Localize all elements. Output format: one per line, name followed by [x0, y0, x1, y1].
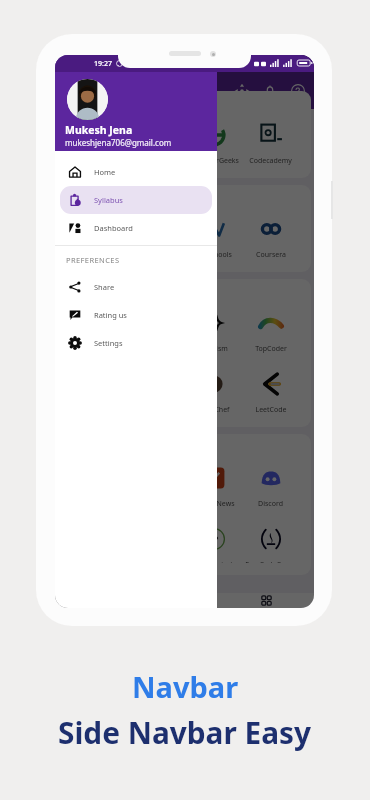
staticText: Dashboard [94, 223, 133, 233]
button[interactable]: Help [290, 83, 306, 99]
button[interactable]: Udemy [70, 216, 128, 260]
staticText: PREFERENCES [66, 255, 120, 265]
button[interactable]: Coursera [242, 216, 299, 260]
staticText: Mukesh Jena [65, 123, 133, 137]
button[interactable]: Share [60, 273, 212, 301]
button[interactable]: Open navigation menu [64, 82, 81, 99]
button[interactable]: HackerNews [185, 465, 242, 509]
staticText: Navbar [132, 667, 239, 706]
staticText: HackerRank [79, 344, 119, 354]
staticText: TopCoder [255, 344, 287, 354]
staticText: W3Schools [196, 250, 232, 260]
staticText: Udemy [87, 250, 111, 260]
staticText: CodeChef [197, 405, 230, 415]
button[interactable]: Home [60, 158, 212, 186]
staticText: Rating us [94, 310, 127, 320]
button[interactable]: OdinProject [185, 526, 242, 563]
button[interactable]: Code [205, 594, 218, 607]
button[interactable]: Rating us [60, 301, 212, 329]
button[interactable]: GeeksForGeeks [185, 122, 242, 166]
staticText: LeetCode [255, 405, 287, 415]
button[interactable]: Codecademy [242, 122, 299, 166]
staticText: GeeksForGeeks [188, 156, 239, 166]
button[interactable]: Programiz [128, 122, 185, 166]
staticText: Coursera [256, 250, 286, 260]
button[interactable]: Dashboard [60, 214, 212, 242]
staticText: Share [94, 282, 115, 292]
staticText: Practice Coding [70, 286, 140, 298]
staticText: Codecademy [249, 156, 292, 166]
button[interactable]: FreeCodeCamp [242, 526, 299, 563]
button[interactable]: Apps [260, 594, 273, 607]
button[interactable]: HackerRank [70, 310, 128, 354]
staticText: OdinProject [194, 560, 233, 563]
staticText: Discord [258, 499, 283, 509]
button[interactable]: Notifications [262, 83, 278, 99]
button[interactable]: Tutorialspoint [70, 122, 128, 166]
button[interactable]: W3Schools [185, 216, 242, 260]
button[interactable]: LeetCode [242, 371, 299, 415]
button[interactable]: Syllabus [60, 186, 212, 214]
button[interactable]: Settings [60, 329, 212, 357]
staticText: Syllabus [94, 195, 123, 205]
staticText: Learn Programming [70, 98, 160, 110]
button[interactable]: TopCoder [242, 310, 299, 354]
staticText: Home [94, 167, 116, 177]
staticText: 19:27 [94, 59, 112, 69]
button[interactable]: Codeism [185, 310, 242, 354]
button[interactable]: Reorder [234, 83, 250, 99]
staticText: Online Courses [70, 192, 138, 204]
button[interactable]: CodeChef [185, 371, 242, 415]
staticText: Settings [94, 338, 123, 348]
button[interactable]: edX [128, 216, 185, 260]
button[interactable]: Discord [242, 465, 299, 509]
staticText: mukeshjena706@gmail.com [65, 137, 172, 148]
staticText: HackerNews [193, 499, 235, 509]
staticText: Codeism [199, 344, 228, 354]
staticText: Side Navbar Easy [58, 712, 312, 753]
staticText: FreeCodeCamp [245, 560, 296, 563]
